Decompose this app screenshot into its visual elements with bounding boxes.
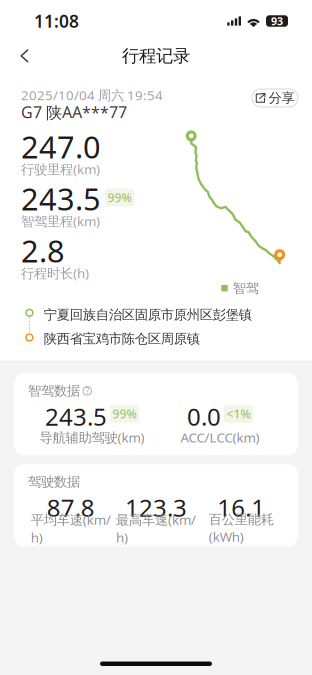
staticText: 243.5	[21, 178, 101, 219]
staticText: 行程记录	[122, 45, 190, 67]
staticText: 智驾	[233, 280, 259, 296]
staticText: 243.5	[45, 400, 107, 432]
button[interactable]: 分享	[252, 89, 298, 107]
staticText: 2025/10/04 周六 19:54	[21, 86, 163, 104]
staticText: 0.0	[187, 400, 221, 432]
staticText: 行程时长(h)	[21, 264, 89, 282]
staticText: 智驾里程(km)	[21, 212, 100, 230]
staticText: 99%	[107, 190, 131, 205]
staticText: 11:08	[34, 9, 79, 32]
staticText: 16.1	[217, 491, 265, 523]
staticText: 行驶里程(km)	[21, 160, 100, 178]
staticText: 2.8	[21, 230, 65, 271]
staticText: 宁夏回族自治区固原市原州区彭堡镇	[44, 307, 252, 323]
staticText: 分享	[268, 90, 294, 106]
staticText: 247.0	[21, 126, 101, 167]
staticText: 99%	[112, 406, 136, 422]
staticText: 最高车速(km/h)	[116, 511, 196, 546]
staticText: G7 陕AA***77	[21, 101, 127, 123]
button[interactable]: Back	[0, 42, 43, 70]
staticText: 平均车速(km/h)	[31, 511, 111, 546]
staticText: <1%	[226, 406, 250, 422]
staticText: 百公里能耗(kWh)	[209, 511, 274, 545]
staticText: 导航辅助驾驶(km)	[39, 428, 144, 446]
staticText: 93	[271, 14, 283, 28]
staticText: 123.3	[125, 491, 187, 523]
staticText: 驾驶数据	[28, 474, 80, 490]
staticText: 智驾数据	[28, 383, 80, 399]
staticText: 陕西省宝鸡市陈仓区周原镇	[44, 331, 200, 347]
staticText: ACC/LCC(km)	[180, 428, 259, 446]
staticText: 87.8	[47, 491, 95, 523]
staticText: ?	[86, 386, 89, 396]
